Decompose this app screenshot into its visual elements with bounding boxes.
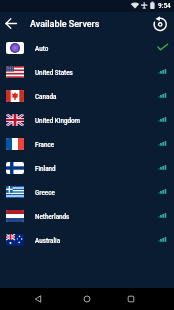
- button[interactable]: Australia: [0, 228, 174, 252]
- button[interactable]: Netherlands: [0, 204, 174, 228]
- staticText: Greece: [35, 189, 55, 196]
- button[interactable]: [120, 288, 142, 310]
- staticText: United States: [35, 69, 73, 76]
- staticText: Netherlands: [35, 213, 70, 220]
- button[interactable]: Canada: [0, 84, 174, 108]
- staticText: Canada: [35, 93, 57, 100]
- button[interactable]: [27, 288, 49, 310]
- staticText: United Kingdom: [35, 117, 81, 124]
- button[interactable]: [76, 288, 98, 310]
- button[interactable]: [4, 16, 20, 32]
- button[interactable]: United Kingdom: [0, 108, 174, 132]
- staticText: Australia: [35, 237, 61, 244]
- button[interactable]: Auto: [0, 36, 174, 60]
- staticText: Auto: [35, 45, 49, 52]
- button[interactable]: France: [0, 132, 174, 156]
- staticText: 9:54: [158, 2, 171, 10]
- button[interactable]: United States: [0, 60, 174, 84]
- button[interactable]: Greece: [0, 180, 174, 204]
- staticText: Available Servers: [30, 19, 100, 30]
- button[interactable]: Finland: [0, 156, 174, 180]
- staticText: France: [35, 141, 55, 148]
- button[interactable]: [152, 16, 168, 32]
- staticText: Finland: [35, 165, 56, 172]
